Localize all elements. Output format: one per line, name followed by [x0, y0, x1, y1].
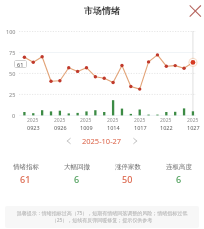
staticText: 涨停家数 — [115, 163, 141, 171]
staticText: 50 — [9, 70, 16, 77]
staticText: 2025 — [160, 117, 172, 124]
staticText: 25 — [9, 91, 16, 98]
staticText: 2025-10-27 — [82, 136, 122, 146]
staticText: 大幅回撤 — [64, 163, 90, 171]
staticText: 61 — [17, 61, 24, 68]
staticText: 0926 — [54, 124, 67, 131]
button[interactable]: 2025-10-27 — [76, 136, 128, 146]
staticText: 2025 — [107, 117, 119, 124]
staticText: 0923 — [27, 124, 40, 131]
staticText: 6 — [176, 173, 182, 185]
button[interactable]: 涨停家数 — [102, 163, 153, 185]
staticText: 1022 — [160, 124, 173, 131]
staticText: 2025 — [54, 117, 66, 124]
staticText: 1017 — [134, 124, 147, 131]
button[interactable]: Close — [186, 2, 204, 20]
staticText: 情绪指标 — [13, 163, 39, 171]
staticText: 75 — [9, 49, 16, 56]
staticText: 1014 — [107, 124, 120, 131]
button[interactable]: 大幅回撤 — [51, 163, 102, 185]
staticText: 0 — [12, 112, 16, 119]
staticText: 2025 — [134, 117, 146, 124]
staticText: 1009 — [80, 124, 93, 131]
staticText: 2025 — [187, 117, 199, 124]
button[interactable]: Previous day — [62, 134, 76, 148]
staticText: 温馨提示：情绪指标过高（75），短期有情绪回落调整的风险；情绪指标过低（25），… — [8, 210, 196, 224]
staticText: 100 — [6, 28, 16, 35]
staticText: 61 — [20, 173, 31, 185]
staticText: 6 — [74, 173, 80, 185]
staticText: 50 — [122, 173, 133, 185]
staticText: 2025 — [80, 117, 92, 124]
button[interactable]: 连板高度 — [153, 163, 204, 185]
staticText: 市场情绪 — [84, 5, 120, 16]
button[interactable]: 情绪指标 — [0, 163, 51, 185]
staticText: 连板高度 — [166, 163, 192, 171]
button[interactable]: Next day — [128, 134, 142, 148]
staticText: 2025 — [27, 117, 39, 124]
staticText: 1027 — [187, 124, 200, 131]
